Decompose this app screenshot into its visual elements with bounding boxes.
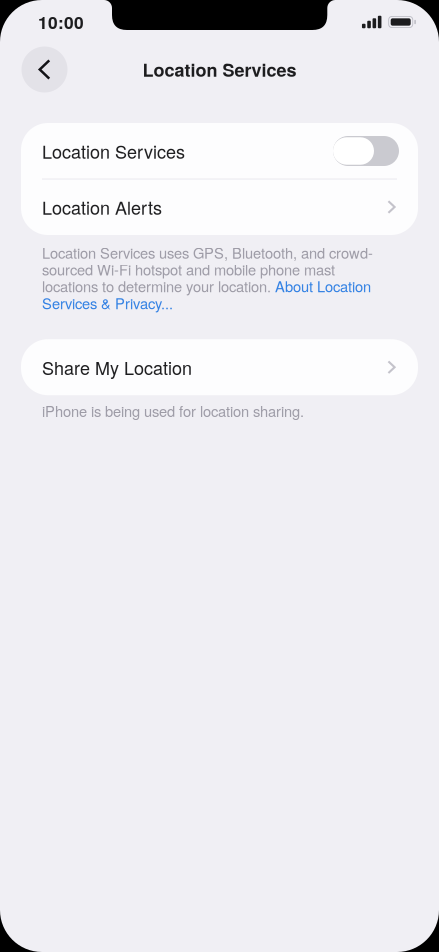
staticText: Location Services [142, 57, 296, 82]
button[interactable]: Share My Location [21, 339, 418, 395]
staticText: Location Services uses GPS, Bluetooth, a… [42, 244, 373, 311]
staticText: Share My Location [42, 354, 192, 380]
button[interactable]: Location Alerts [21, 179, 418, 235]
staticText: iPhone is being used for location sharin… [42, 402, 304, 419]
staticText: 10:00 [38, 10, 84, 34]
button[interactable]: Location Services [21, 123, 418, 179]
staticText: Location Services [42, 138, 185, 164]
staticText: Location Alerts [42, 194, 162, 220]
button[interactable]: Back [21, 46, 67, 92]
